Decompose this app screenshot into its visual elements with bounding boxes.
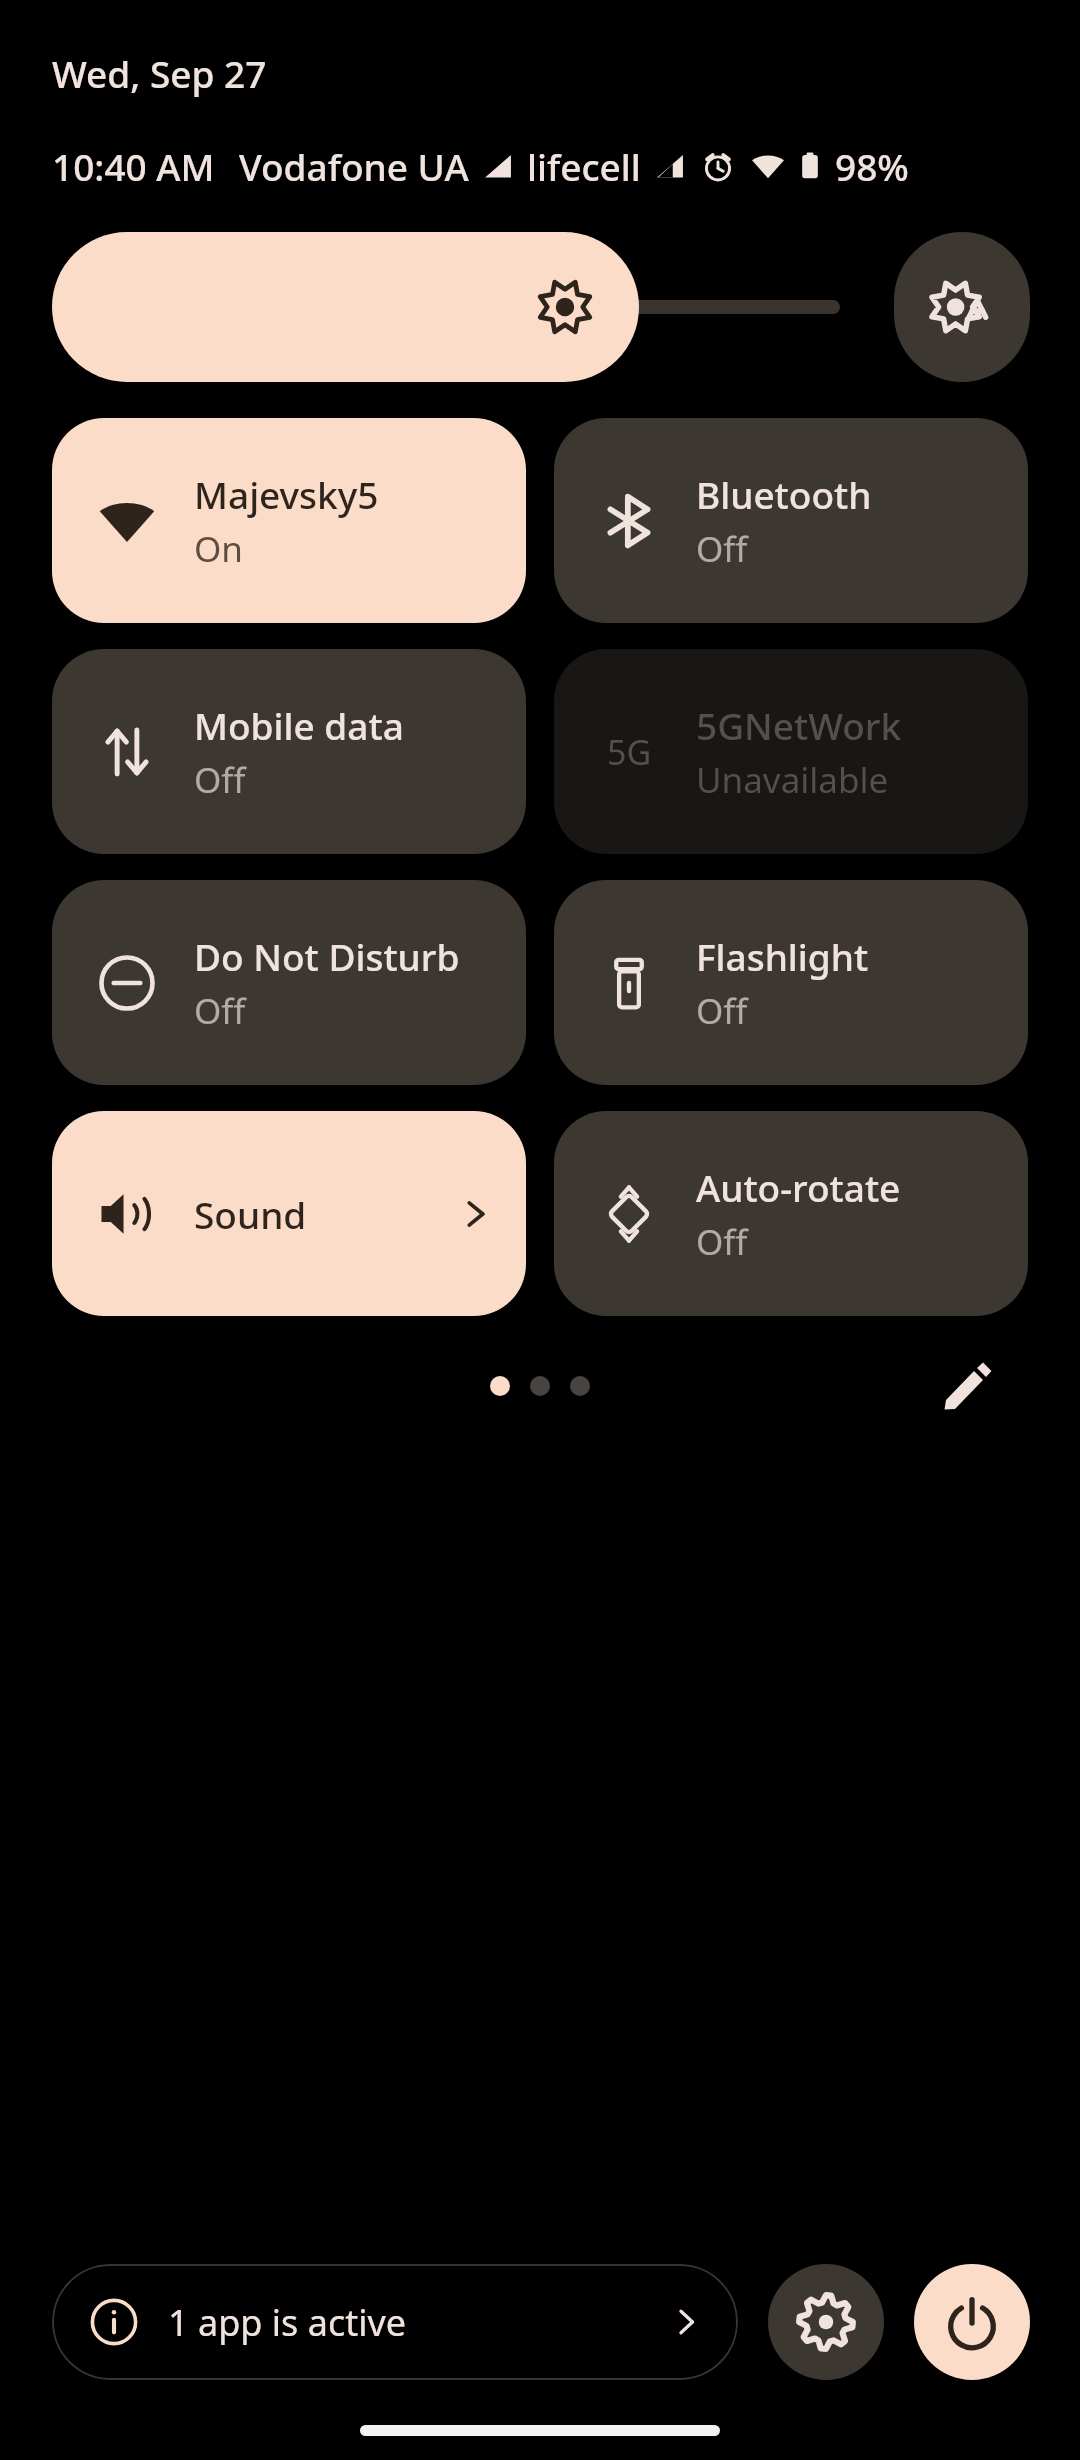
button[interactable]: 5G [554, 649, 1028, 854]
staticText: Do Not Disturb [194, 931, 460, 981]
button[interactable]: Power [914, 2264, 1030, 2380]
staticText: 98% [835, 141, 909, 191]
staticText: Unavailable [696, 756, 889, 804]
button[interactable]: Do Not Disturb [52, 880, 526, 1085]
staticText: Mobile data [194, 700, 404, 750]
staticText: Off [696, 987, 748, 1035]
button[interactable]: Edit tiles [936, 1356, 1000, 1416]
button[interactable]: Auto-rotate [554, 1111, 1028, 1316]
staticText: Off [696, 525, 748, 573]
staticText: 5G [607, 729, 652, 775]
button[interactable]: Majevsky5 [52, 418, 526, 623]
staticText: 10:40 AM [52, 141, 215, 191]
staticText: Off [194, 987, 246, 1035]
staticText: 5GNetWork [696, 700, 902, 750]
staticText: On [194, 525, 243, 573]
button[interactable]: Flashlight [554, 880, 1028, 1085]
staticText: Bluetooth [696, 469, 872, 519]
staticText: Majevsky5 [194, 469, 379, 519]
button[interactable]: Bluetooth [554, 418, 1028, 623]
staticText: Off [696, 1218, 748, 1266]
staticText: Wed, Sep 27 [52, 48, 267, 98]
staticText: Off [194, 756, 246, 804]
staticText: 1 app is active [168, 2298, 407, 2347]
staticText: Sound [194, 1189, 307, 1239]
button[interactable]: Auto brightness [894, 232, 1030, 382]
button[interactable]: Mobile data [52, 649, 526, 854]
button[interactable]: Settings [768, 2264, 884, 2380]
staticText: Flashlight [696, 931, 869, 981]
button[interactable]: Sound [52, 1111, 526, 1316]
staticText: Vodafone UA [239, 141, 469, 191]
button[interactable]: 1 app is active [52, 2264, 738, 2380]
staticText: lifecell [527, 141, 641, 191]
button[interactable] [52, 232, 639, 382]
staticText: Auto-rotate [696, 1162, 901, 1212]
